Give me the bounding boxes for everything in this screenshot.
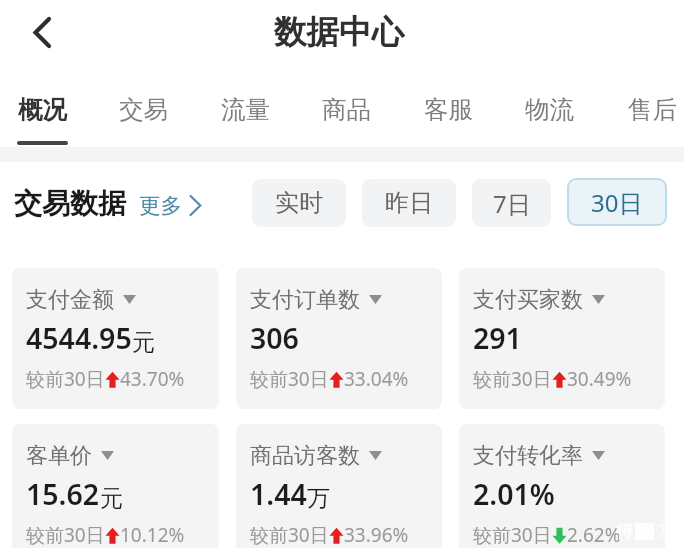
button[interactable]: 商品 bbox=[298, 82, 394, 148]
button[interactable]: 支付金额 bbox=[12, 268, 219, 409]
staticText: 较前30日 bbox=[26, 366, 105, 392]
staticText: 更多 bbox=[139, 192, 182, 219]
button[interactable]: 概况 bbox=[0, 82, 90, 148]
button[interactable]: 7日 bbox=[472, 179, 551, 227]
staticText: 售后 bbox=[628, 94, 677, 125]
button[interactable]: 客服 bbox=[400, 82, 496, 148]
staticText: 支付转化率 bbox=[473, 442, 583, 470]
button[interactable]: Back bbox=[10, 7, 62, 59]
button[interactable]: 商品访客数 bbox=[236, 424, 442, 548]
button[interactable]: 物流 bbox=[501, 82, 597, 148]
staticText: 昨日 bbox=[385, 188, 433, 218]
button[interactable]: 支付订单数 bbox=[236, 268, 442, 409]
staticText: 306 bbox=[250, 319, 299, 358]
staticText: 较前30日 bbox=[250, 522, 329, 548]
staticText: 交易 bbox=[119, 94, 168, 125]
staticText: 291 bbox=[473, 319, 522, 358]
staticText: 4544.95 bbox=[26, 319, 132, 358]
button[interactable]: 30日 bbox=[567, 178, 667, 226]
staticText: 30.49% bbox=[567, 366, 632, 392]
staticText: 支付金额 bbox=[26, 286, 114, 314]
staticText: 10.12% bbox=[120, 522, 185, 548]
button[interactable]: 流量 bbox=[197, 82, 293, 148]
staticText: 客单价 bbox=[26, 442, 92, 470]
staticText: 数据中心 bbox=[274, 12, 404, 53]
button[interactable]: 交易 bbox=[95, 82, 191, 148]
staticText: 元 bbox=[100, 484, 123, 513]
staticText: 元 bbox=[132, 328, 155, 357]
staticText: 概况 bbox=[18, 94, 67, 125]
staticText: 支付买家数 bbox=[473, 286, 583, 314]
staticText: 客服 bbox=[424, 94, 473, 125]
button[interactable]: 实时 bbox=[252, 179, 346, 227]
staticText: 7日 bbox=[493, 187, 531, 220]
staticText: 实时 bbox=[275, 188, 323, 218]
staticText: 交易数据 bbox=[14, 186, 126, 221]
staticText: 物流 bbox=[525, 94, 574, 125]
staticText: 33.96% bbox=[344, 522, 409, 548]
button[interactable]: 交易数据 bbox=[14, 186, 202, 221]
staticText: 支付订单数 bbox=[250, 286, 360, 314]
staticText: 较前30日 bbox=[473, 522, 552, 548]
staticText: 43.70% bbox=[120, 366, 185, 392]
button[interactable]: 售后 bbox=[604, 82, 684, 148]
staticText: 得 bbox=[616, 521, 633, 542]
staticText: 较前30日 bbox=[26, 522, 105, 548]
staticText: 刀 bbox=[656, 522, 672, 542]
staticText: 33.04% bbox=[344, 366, 409, 392]
staticText: 万 bbox=[307, 484, 330, 513]
staticText: 2.01% bbox=[473, 475, 555, 514]
button[interactable]: 昨日 bbox=[362, 179, 456, 227]
staticText: 15.62 bbox=[26, 475, 100, 514]
button[interactable]: 支付转化率 bbox=[459, 424, 665, 548]
staticText: 1.44 bbox=[250, 475, 307, 514]
staticText: 较前30日 bbox=[250, 366, 329, 392]
staticText: 30日 bbox=[591, 186, 643, 219]
button[interactable]: 客单价 bbox=[12, 424, 219, 548]
staticText: 商品 bbox=[322, 94, 371, 125]
staticText: 商品访客数 bbox=[250, 442, 360, 470]
button[interactable]: 支付买家数 bbox=[459, 268, 665, 409]
staticText: 流量 bbox=[221, 94, 270, 125]
staticText: 较前30日 bbox=[473, 366, 552, 392]
staticText: 2.62% bbox=[567, 522, 621, 548]
